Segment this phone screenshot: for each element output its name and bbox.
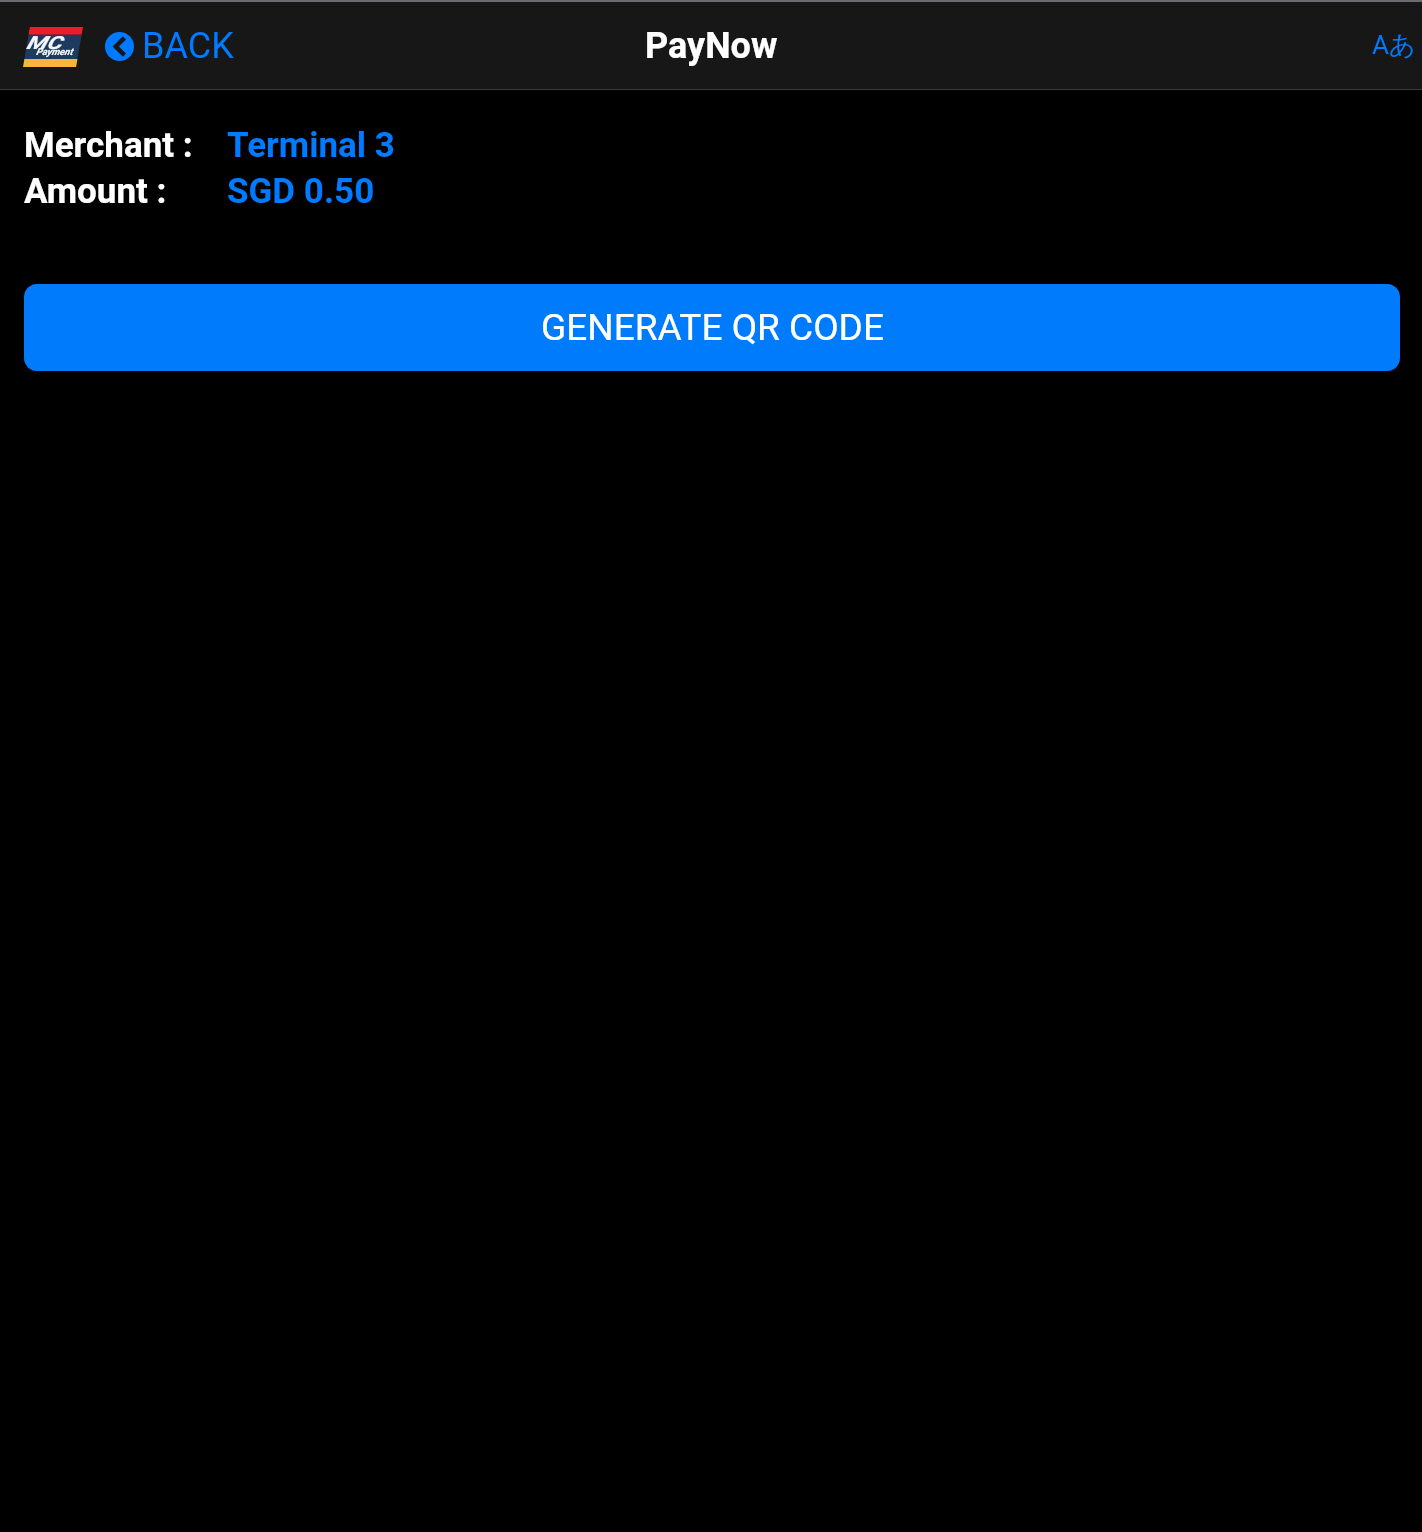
staticText: BACK bbox=[142, 25, 234, 67]
staticText: GENERATE QR CODE bbox=[541, 306, 884, 349]
other: MC Payment logo bbox=[23, 27, 83, 67]
other: Back bbox=[105, 32, 134, 61]
staticText: Amount : bbox=[24, 171, 167, 212]
staticText: Terminal 3 bbox=[227, 125, 395, 166]
button[interactable]: Back bbox=[100, 19, 239, 73]
staticText: PayNow bbox=[645, 25, 778, 67]
staticText: Payment bbox=[36, 46, 73, 57]
button[interactable]: GENERATE QR CODE bbox=[24, 284, 1400, 371]
button[interactable]: Change language bbox=[1358, 19, 1422, 72]
staticText: SGD 0.50 bbox=[227, 171, 375, 212]
staticText: Aあ bbox=[1372, 29, 1416, 62]
staticText: Merchant : bbox=[24, 125, 193, 166]
staticText: MC bbox=[26, 32, 62, 53]
